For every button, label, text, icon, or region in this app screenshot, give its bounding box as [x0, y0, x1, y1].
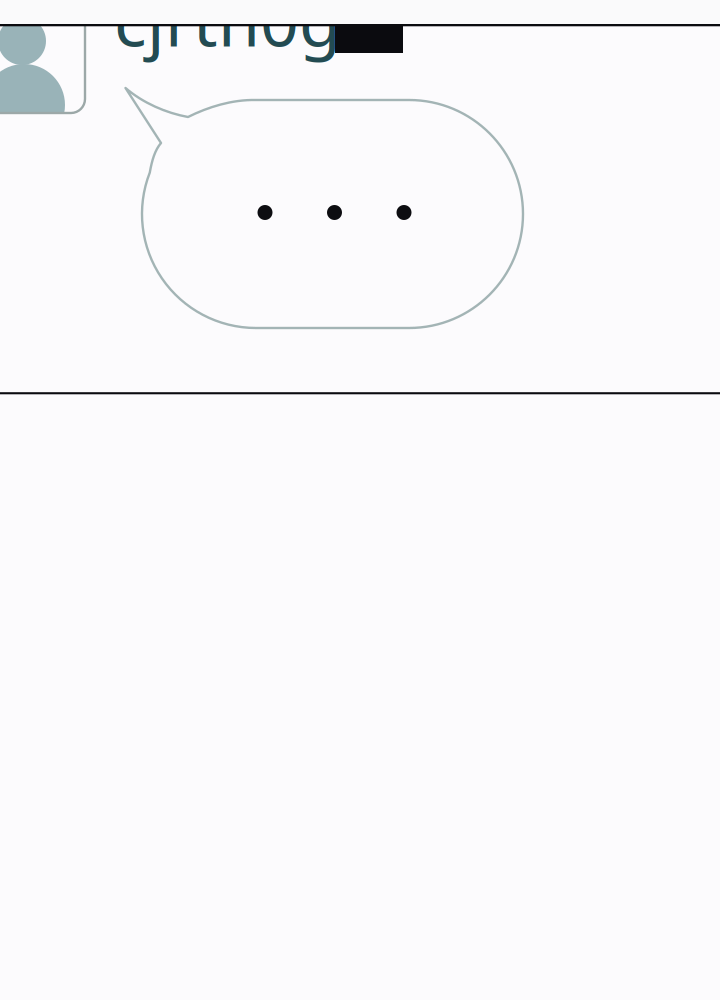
button[interactable]: cjrth0g	[0, 0, 227, 90]
button[interactable]: Contact avatar	[0, 0, 145, 105]
staticText: cjrth0g	[114, 0, 341, 65]
button[interactable]: cjrth0g is typing	[0, 0, 720, 1000]
